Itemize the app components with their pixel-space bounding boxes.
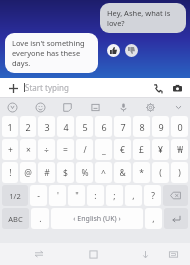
button[interactable]: 7 xyxy=(114,116,131,137)
button[interactable]: % xyxy=(76,162,93,183)
staticText: % xyxy=(81,167,89,179)
staticText: # xyxy=(44,167,50,179)
button[interactable]: 1 xyxy=(2,116,18,137)
button[interactable]: 9 xyxy=(152,116,169,137)
button[interactable]: Thumbs up xyxy=(107,44,120,57)
staticText: - xyxy=(37,190,40,202)
staticText: ) xyxy=(178,167,181,179)
button[interactable]: ABC xyxy=(2,208,29,229)
button[interactable]: 0 xyxy=(171,116,188,137)
button[interactable]: @ xyxy=(20,162,36,183)
button[interactable]: $ xyxy=(57,162,74,183)
staticText: 6 xyxy=(101,121,107,133)
button[interactable]: Emoji xyxy=(33,100,47,114)
button[interactable]: = xyxy=(57,139,74,160)
staticText: 9 xyxy=(158,121,164,133)
staticText: × xyxy=(26,144,31,156)
button[interactable]: ' xyxy=(49,185,66,206)
button[interactable]: Start typing xyxy=(24,82,150,93)
staticText: 8 xyxy=(139,121,145,133)
staticText: : xyxy=(94,190,97,202)
button[interactable]: 2 xyxy=(20,116,36,137)
button[interactable]: Keyboard layout xyxy=(164,245,182,263)
button[interactable]: ÷ xyxy=(38,139,55,160)
button[interactable]: ₩ xyxy=(171,139,188,160)
staticText: ; xyxy=(113,190,116,202)
staticText: = xyxy=(63,144,68,156)
staticText: ^ xyxy=(101,167,106,179)
button[interactable]: Thumbs down xyxy=(125,44,138,57)
button[interactable]: Enter xyxy=(164,208,188,229)
button[interactable]: Camera xyxy=(170,81,184,95)
button[interactable]: # xyxy=(38,162,55,183)
button[interactable]: + xyxy=(2,139,18,160)
button[interactable]: Hide keyboard xyxy=(136,245,154,263)
button[interactable]: Love isn't something everyone has these … xyxy=(5,33,98,73)
button[interactable]: £ xyxy=(133,139,150,160)
button[interactable]: Backspace xyxy=(163,185,188,206)
button[interactable]: Call xyxy=(150,81,164,95)
staticText: 4 xyxy=(63,121,69,133)
staticText: ÷ xyxy=(44,144,49,156)
button[interactable]: Keyboard settings xyxy=(143,100,157,114)
button[interactable]: ) xyxy=(171,162,188,183)
button[interactable]: 1/2 xyxy=(2,185,28,206)
button[interactable]: & xyxy=(114,162,131,183)
button[interactable]: 6 xyxy=(95,116,112,137)
button[interactable]: Add attachment xyxy=(6,81,20,95)
button[interactable]: ¥ xyxy=(152,139,169,160)
button[interactable]: Voice input xyxy=(116,100,130,114)
staticText: Hey, Ashe, what is love? xyxy=(107,8,179,28)
staticText: * xyxy=(139,167,144,179)
button[interactable]: * xyxy=(133,162,150,183)
staticText: ! xyxy=(9,167,12,179)
staticText: . xyxy=(39,213,42,225)
staticText: ? xyxy=(151,190,155,202)
button[interactable]: " xyxy=(68,185,85,206)
button[interactable]: × xyxy=(20,139,36,160)
button[interactable]: Recent apps xyxy=(84,245,102,263)
staticText: + xyxy=(8,144,13,156)
staticText: 5 xyxy=(82,121,88,133)
button[interactable]: 3 xyxy=(38,116,55,137)
button[interactable]: Hey, Ashe, what is love? xyxy=(100,3,186,33)
button[interactable]: , xyxy=(125,185,142,206)
button[interactable]: . xyxy=(31,208,49,229)
staticText: , xyxy=(152,213,155,225)
button[interactable]: - xyxy=(30,185,47,206)
button[interactable]: : xyxy=(87,185,104,206)
button[interactable]: _ xyxy=(95,139,112,160)
staticText: ' xyxy=(57,190,59,202)
staticText: ¥ xyxy=(158,144,163,156)
staticText: @ xyxy=(24,167,32,179)
button[interactable]: ! xyxy=(2,162,18,183)
staticText: 1 xyxy=(7,121,13,133)
staticText: $ xyxy=(63,167,68,179)
button[interactable]: ‹ English (UK) › xyxy=(51,208,143,229)
staticText: ABC xyxy=(8,214,23,224)
button[interactable]: Switch keyboard xyxy=(30,245,48,263)
staticText: ‹ English (UK) › xyxy=(73,214,121,224)
staticText: 0 xyxy=(177,121,183,133)
button[interactable]: 8 xyxy=(133,116,150,137)
button[interactable]: € xyxy=(114,139,131,160)
button[interactable]: 4 xyxy=(57,116,74,137)
button[interactable]: ( xyxy=(152,162,169,183)
button[interactable]: ? xyxy=(144,185,161,206)
staticText: ₩ xyxy=(177,144,183,156)
button[interactable]: 5 xyxy=(76,116,93,137)
button[interactable]: , xyxy=(145,208,162,229)
staticText: Love isn't something everyone has these … xyxy=(12,38,91,68)
button[interactable]: Text edit xyxy=(5,100,19,114)
button[interactable]: Collapse toolbar xyxy=(171,100,185,114)
button[interactable]: ; xyxy=(106,185,123,206)
staticText: & xyxy=(119,167,126,179)
staticText: , xyxy=(132,190,135,202)
button[interactable]: / xyxy=(76,139,93,160)
button[interactable]: Clipboard xyxy=(88,100,102,114)
button[interactable]: ^ xyxy=(95,162,112,183)
staticText: 3 xyxy=(44,121,50,133)
staticText: 7 xyxy=(120,121,126,133)
staticText: Start typing xyxy=(25,82,69,93)
button[interactable]: Stickers xyxy=(60,100,74,114)
